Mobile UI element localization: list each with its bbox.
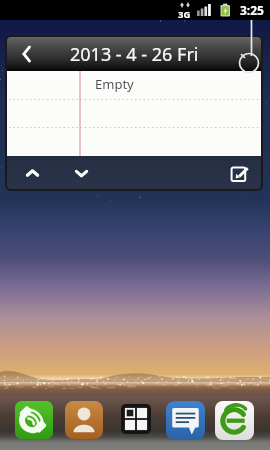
button[interactable]: Phone: [15, 401, 53, 439]
staticText: 3G: [178, 8, 191, 21]
button[interactable]: Apps: [121, 404, 151, 434]
button[interactable]: Contacts: [65, 401, 103, 439]
button[interactable]: Previous day: [12, 39, 42, 69]
button[interactable]: Messaging: [166, 401, 205, 440]
button[interactable]: Scroll down: [66, 158, 96, 188]
button[interactable]: Browser: [215, 401, 254, 440]
button[interactable]: Scroll up: [17, 158, 47, 188]
staticText: 2013 - 4 - 26 Fri: [70, 42, 199, 67]
staticText: Empty: [95, 75, 134, 93]
staticText: 3:25: [240, 2, 264, 18]
button[interactable]: New memo: [224, 158, 254, 188]
